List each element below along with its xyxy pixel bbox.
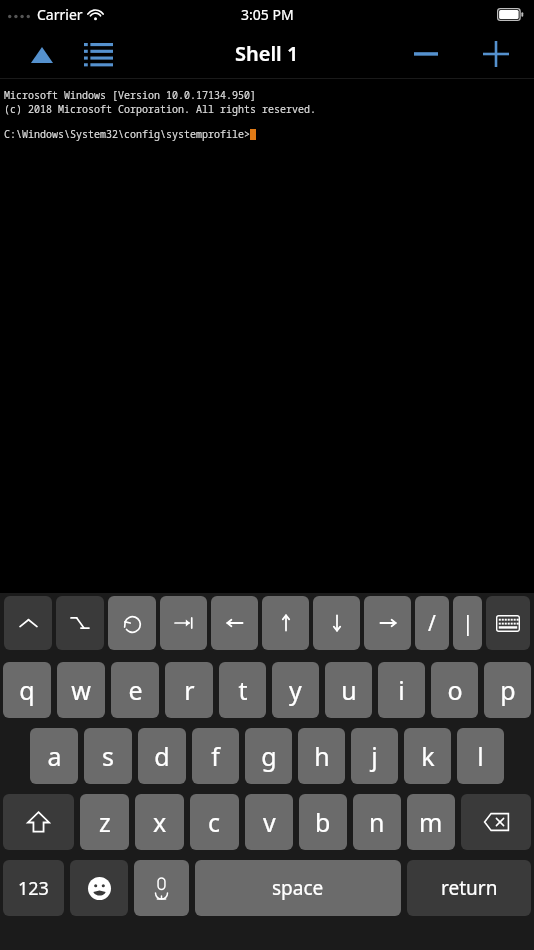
button[interactable]: j: [351, 728, 398, 784]
button[interactable]: i: [378, 662, 425, 718]
button[interactable]: g: [245, 728, 292, 784]
button[interactable]: History: [108, 596, 156, 650]
button[interactable]: e: [111, 662, 159, 718]
button[interactable]: a: [30, 728, 78, 784]
button[interactable]: Tab: [160, 596, 207, 650]
button[interactable]: s: [84, 728, 132, 784]
button[interactable]: q: [3, 662, 51, 718]
staticText: 123: [18, 876, 49, 901]
staticText: p: [500, 673, 516, 707]
staticText: f: [211, 739, 220, 773]
staticText: y: [289, 673, 302, 707]
button[interactable]: n: [353, 794, 401, 850]
button[interactable]: h: [298, 728, 345, 784]
button[interactable]: Hide keyboard: [486, 596, 530, 650]
button[interactable]: Remove shell: [404, 32, 448, 76]
button[interactable]: r: [165, 662, 213, 718]
staticText: a: [47, 739, 62, 773]
staticText: i: [398, 673, 405, 707]
staticText: Shell 1: [235, 40, 299, 67]
button[interactable]: Add shell: [474, 32, 518, 76]
button[interactable]: Option: [56, 596, 104, 650]
staticText: C:\Windows\System32\config\systemprofile…: [4, 127, 250, 141]
staticText: n: [369, 805, 385, 839]
button[interactable]: c: [190, 794, 239, 850]
button[interactable]: t: [219, 662, 266, 718]
button[interactable]: Left: [211, 596, 258, 650]
button[interactable]: y: [272, 662, 319, 718]
staticText: v: [263, 805, 276, 839]
button[interactable]: v: [245, 794, 293, 850]
button[interactable]: z: [80, 794, 129, 850]
button[interactable]: Backspace: [461, 794, 531, 850]
staticText: e: [128, 673, 143, 707]
button[interactable]: l: [457, 728, 504, 784]
button[interactable]: 123: [3, 860, 64, 916]
button[interactable]: Right: [364, 596, 411, 650]
staticText: u: [341, 673, 357, 707]
staticText: return: [441, 875, 498, 901]
staticText: m: [419, 805, 443, 839]
button[interactable]: |: [453, 596, 482, 650]
staticText: c: [208, 805, 221, 839]
staticText: Microsoft Windows [Version 10.0.17134.95…: [4, 88, 256, 102]
staticText: d: [154, 739, 170, 773]
staticText: r: [184, 673, 195, 707]
button[interactable]: Sessions list: [76, 32, 120, 76]
staticText: space: [272, 875, 324, 901]
staticText: b: [315, 805, 331, 839]
staticText: |: [462, 609, 474, 638]
staticText: s: [102, 739, 114, 773]
staticText: w: [71, 673, 91, 707]
button[interactable]: Shift: [3, 794, 74, 850]
button[interactable]: Dictate: [134, 860, 189, 916]
staticText: l: [477, 739, 484, 773]
button[interactable]: o: [431, 662, 478, 718]
staticText: o: [447, 673, 463, 707]
button[interactable]: d: [138, 728, 186, 784]
button[interactable]: p: [484, 662, 531, 718]
button[interactable]: Down: [313, 596, 360, 650]
button[interactable]: w: [57, 662, 105, 718]
staticText: 3:05 PM: [241, 5, 294, 24]
button[interactable]: m: [407, 794, 455, 850]
staticText: z: [99, 805, 111, 839]
staticText: k: [421, 739, 435, 773]
button[interactable]: b: [299, 794, 347, 850]
staticText: j: [371, 739, 378, 773]
button[interactable]: /: [415, 596, 449, 650]
button[interactable]: k: [404, 728, 451, 784]
button[interactable]: Up: [262, 596, 309, 650]
button[interactable]: Scroll up: [20, 32, 64, 76]
staticText: g: [261, 739, 277, 773]
staticText: h: [314, 739, 330, 773]
button[interactable]: space: [195, 860, 401, 916]
button[interactable]: x: [135, 794, 184, 850]
button[interactable]: u: [325, 662, 372, 718]
staticText: x: [153, 805, 167, 839]
staticText: t: [238, 673, 248, 707]
button[interactable]: Emoji: [70, 860, 128, 916]
staticText: q: [19, 673, 35, 707]
button[interactable]: Control: [4, 596, 52, 650]
staticText: (c) 2018 Microsoft Corporation. All righ…: [4, 102, 316, 116]
staticText: Carrier: [37, 5, 83, 24]
staticText: /: [428, 609, 436, 638]
button[interactable]: return: [407, 860, 531, 916]
button[interactable]: f: [192, 728, 239, 784]
